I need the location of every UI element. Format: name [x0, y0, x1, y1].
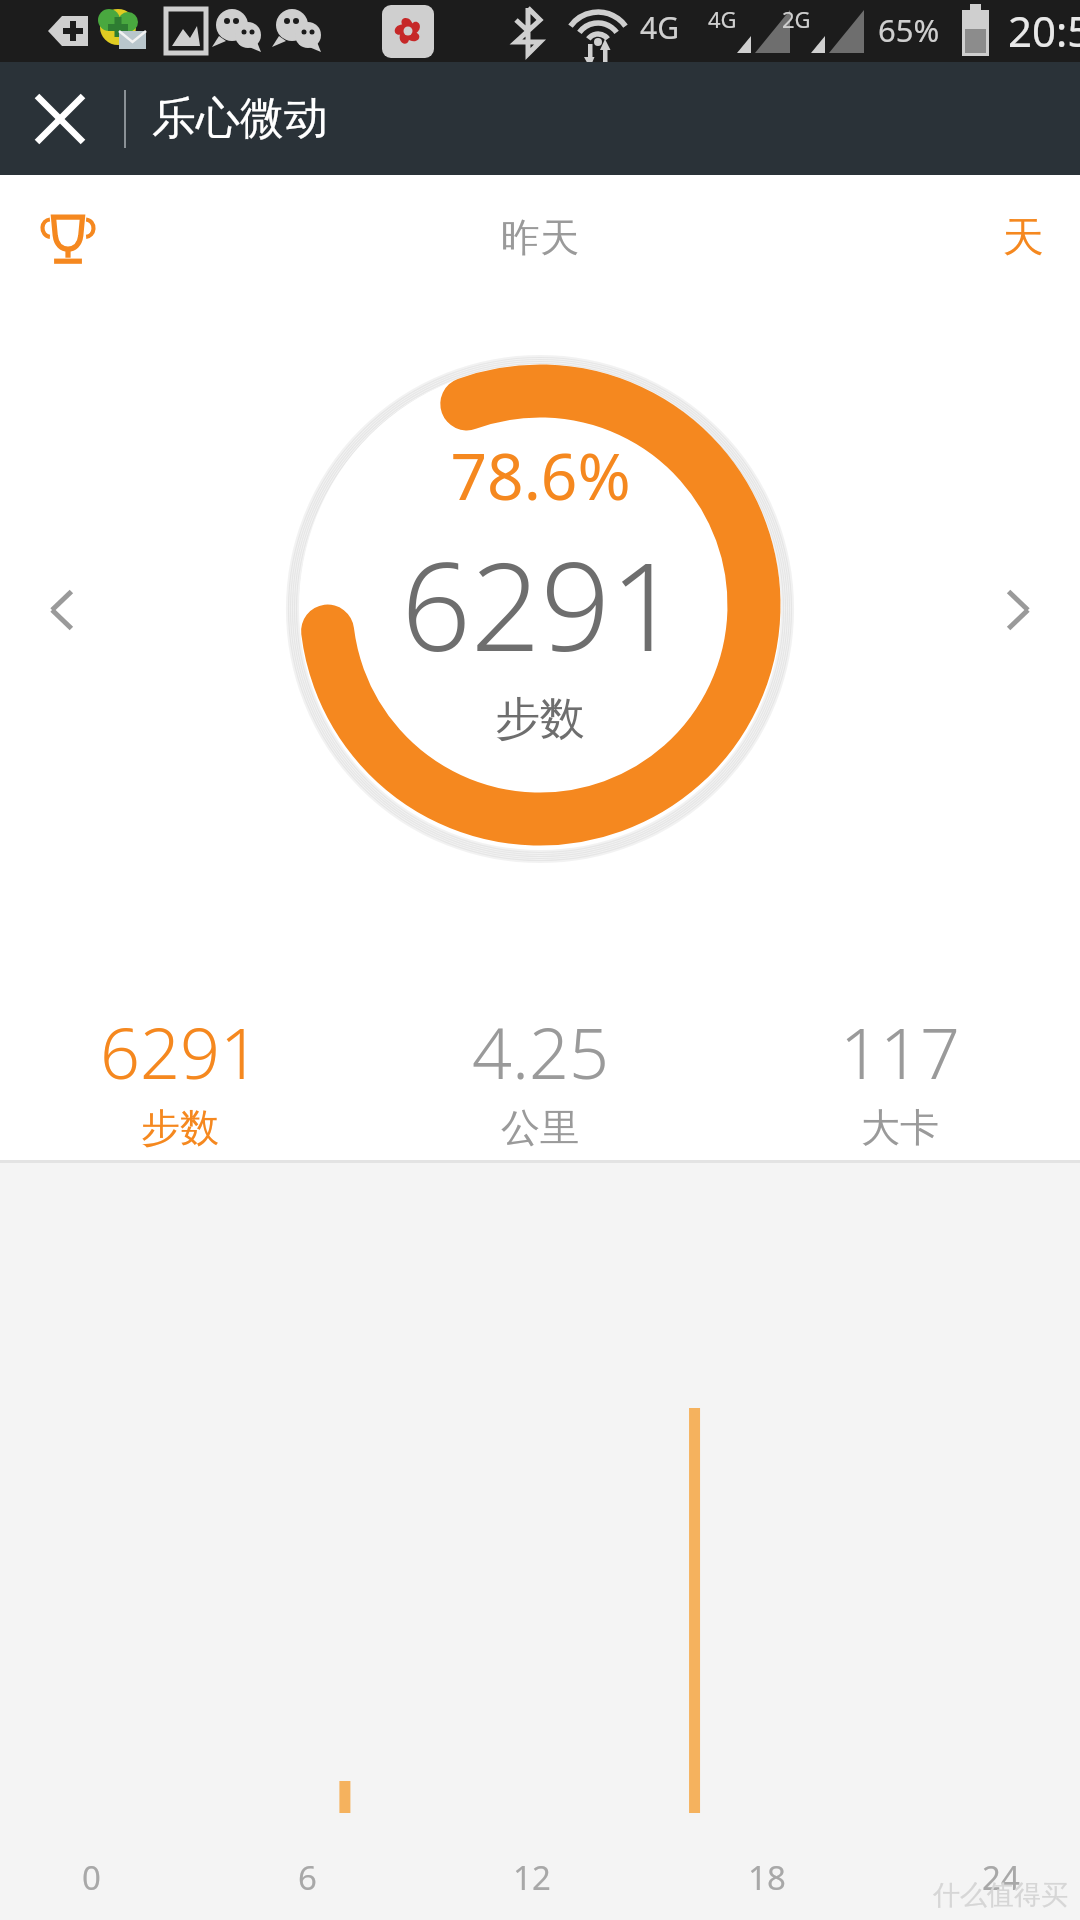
staticText: 4G — [708, 4, 737, 34]
staticText: 6 — [298, 1855, 317, 1900]
staticText: 步数 — [495, 691, 585, 748]
staticText: 大卡 — [861, 1103, 939, 1152]
staticText: 117 — [840, 1004, 960, 1099]
staticText: 0 — [82, 1855, 101, 1900]
staticText: 4G — [640, 7, 679, 48]
staticText: 天 — [1003, 212, 1044, 264]
button[interactable]: Next day — [974, 567, 1060, 653]
button[interactable]: Previous day — [20, 567, 106, 653]
staticText: 65% — [878, 9, 940, 51]
staticText: 乐心微动 — [152, 91, 328, 146]
button[interactable]: 6291 — [0, 990, 360, 1152]
button[interactable]: 4.25 — [360, 990, 720, 1152]
staticText: 6291 — [401, 521, 680, 687]
staticText: 公里 — [501, 1103, 579, 1152]
staticText: 12 — [513, 1855, 551, 1900]
button[interactable]: 117 — [720, 990, 1080, 1152]
staticText: 什么值得买 — [933, 1878, 1068, 1912]
button[interactable]: Achievements — [20, 190, 116, 286]
staticText: 20:53 — [1008, 2, 1080, 59]
button[interactable]: 天 — [985, 198, 1062, 278]
staticText: 6291 — [100, 1004, 260, 1099]
staticText: 18 — [748, 1855, 786, 1900]
staticText: 步数 — [141, 1103, 219, 1152]
staticText: 24 — [982, 1855, 1020, 1900]
button[interactable]: Close — [16, 75, 104, 163]
staticText: 昨天 — [501, 213, 579, 262]
staticText: 2G — [782, 4, 811, 34]
staticText: 4.25 — [472, 1004, 609, 1099]
staticText: 78.6% — [450, 432, 631, 519]
